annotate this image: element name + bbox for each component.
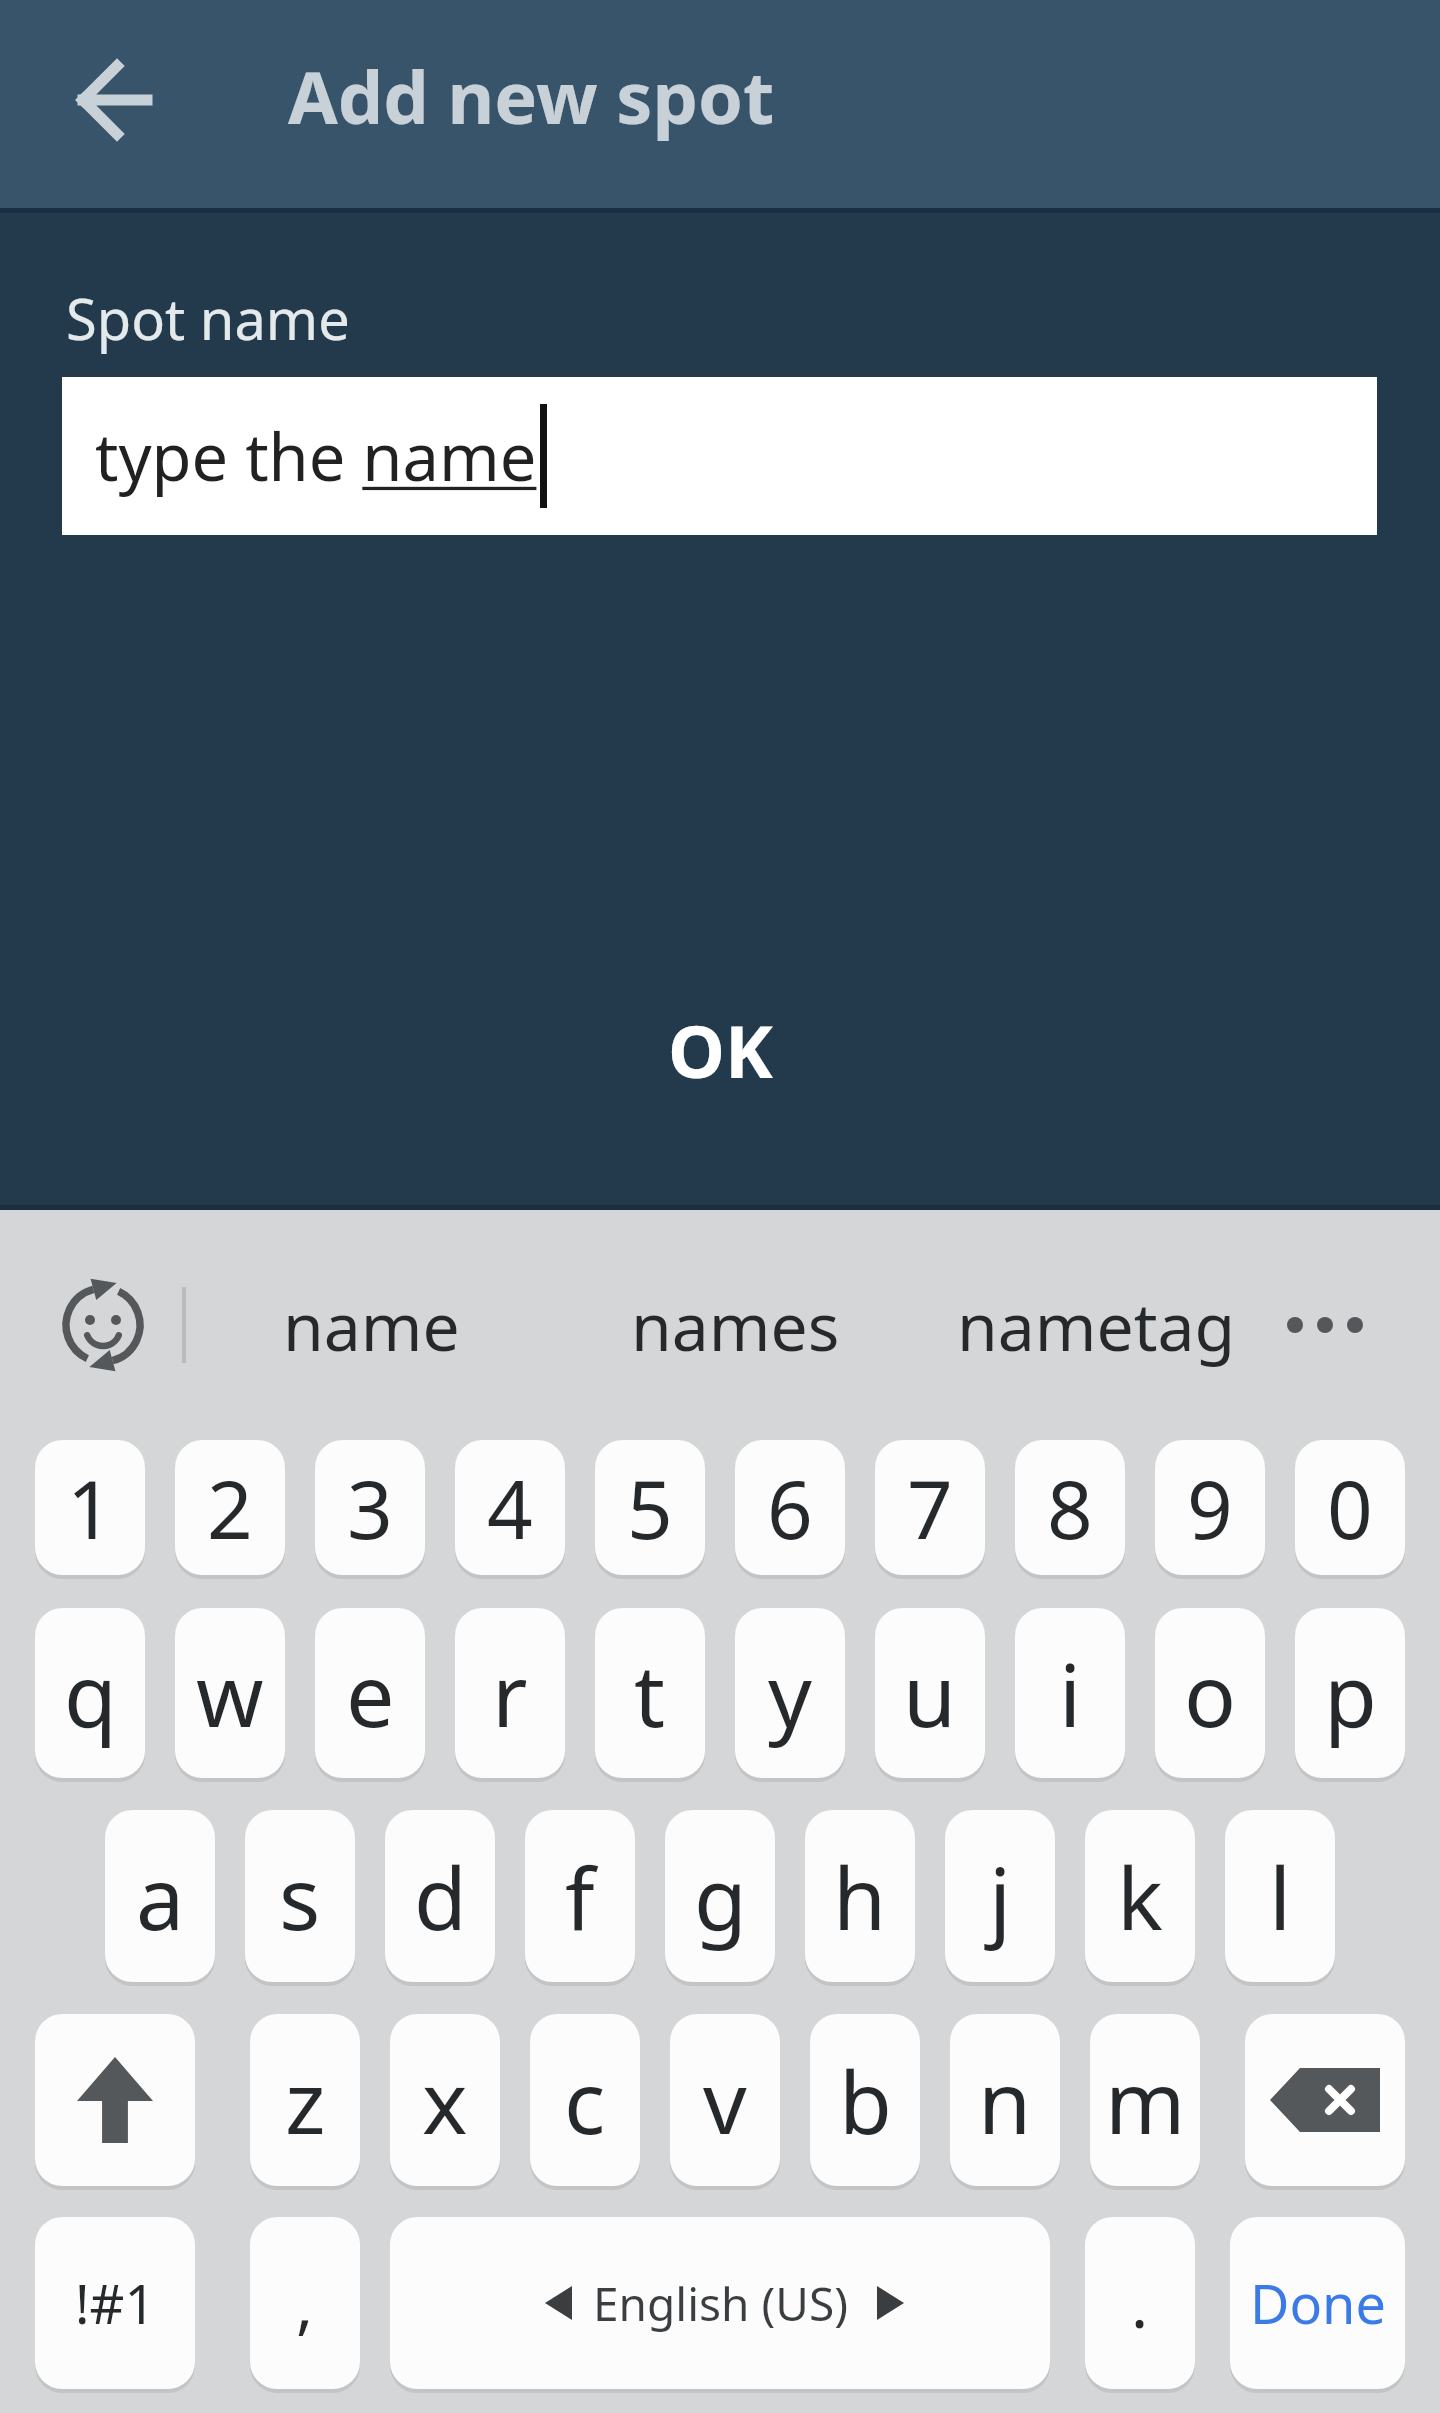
button[interactable]: n	[950, 2014, 1060, 2186]
staticText: ,	[296, 2260, 314, 2347]
button[interactable]: OK	[570, 985, 870, 1115]
button[interactable]: type the name	[62, 377, 1377, 535]
staticText: name	[283, 1280, 460, 1370]
staticText: 5	[627, 1453, 673, 1562]
button[interactable]: k	[1085, 1810, 1195, 1982]
staticText: j	[989, 1838, 1012, 1955]
staticText: 2	[207, 1453, 253, 1562]
button[interactable]: 4	[455, 1440, 565, 1575]
button[interactable]: o	[1155, 1608, 1265, 1778]
staticText: 7	[907, 1453, 953, 1562]
staticText: b	[839, 2042, 892, 2159]
staticText: 0	[1327, 1453, 1373, 1562]
staticText: OK	[668, 1001, 773, 1099]
button[interactable]: q	[35, 1608, 145, 1778]
button[interactable]: g	[665, 1810, 775, 1982]
button[interactable]: i	[1015, 1608, 1125, 1778]
staticText: p	[1324, 1635, 1377, 1752]
staticText: s	[279, 1838, 321, 1955]
button[interactable]: name	[256, 1275, 486, 1375]
staticText: x	[422, 2042, 468, 2159]
staticText: 4	[487, 1453, 533, 1562]
button[interactable]	[1245, 2014, 1405, 2186]
staticText: Add new spot	[288, 47, 775, 145]
staticText: r	[492, 1635, 528, 1752]
staticText: w	[196, 1635, 264, 1752]
staticText: 3	[347, 1453, 393, 1562]
button[interactable]: !#1	[35, 2217, 195, 2389]
staticText: type the name	[95, 412, 537, 501]
staticText: a	[136, 1838, 185, 1955]
button[interactable]: names	[620, 1275, 850, 1375]
button[interactable]: x	[390, 2014, 500, 2186]
button[interactable]: ,	[250, 2217, 360, 2389]
staticText: c	[564, 2042, 606, 2159]
staticText: Done	[1250, 2266, 1386, 2340]
button[interactable]: h	[805, 1810, 915, 1982]
button[interactable]: 9	[1155, 1440, 1265, 1575]
staticText: t	[634, 1635, 666, 1752]
button[interactable]: .	[1085, 2217, 1195, 2389]
staticText: n	[978, 2042, 1032, 2159]
button[interactable]	[1280, 1285, 1370, 1365]
button[interactable]: e	[315, 1608, 425, 1778]
button[interactable]: w	[175, 1608, 285, 1778]
staticText: f	[565, 1838, 595, 1955]
button[interactable]: 2	[175, 1440, 285, 1575]
staticText: nametag	[957, 1280, 1236, 1370]
staticText: k	[1117, 1838, 1163, 1955]
button[interactable]: m	[1090, 2014, 1200, 2186]
staticText: 1	[67, 1453, 113, 1562]
button[interactable]: 1	[35, 1440, 145, 1575]
button[interactable]: c	[530, 2014, 640, 2186]
button[interactable]: d	[385, 1810, 495, 1982]
button[interactable]: 5	[595, 1440, 705, 1575]
button[interactable]	[35, 2014, 195, 2186]
staticText: Spot name	[66, 280, 350, 356]
button[interactable]: 3	[315, 1440, 425, 1575]
button[interactable]: u	[875, 1608, 985, 1778]
staticText: m	[1105, 2042, 1186, 2159]
button[interactable]: j	[945, 1810, 1055, 1982]
button[interactable]: Done	[1230, 2217, 1405, 2389]
staticText: 6	[767, 1453, 813, 1562]
button[interactable]: l	[1225, 1810, 1335, 1982]
button[interactable]: z	[250, 2014, 360, 2186]
staticText: y	[768, 1635, 812, 1752]
staticText: z	[285, 2042, 326, 2159]
staticText: v	[703, 2042, 747, 2159]
button[interactable]: s	[245, 1810, 355, 1982]
button[interactable]: y	[735, 1608, 845, 1778]
button[interactable]: English (US)	[390, 2217, 1050, 2389]
staticText: g	[694, 1838, 747, 1955]
button[interactable]: v	[670, 2014, 780, 2186]
staticText: names	[631, 1280, 840, 1370]
button[interactable]: 0	[1295, 1440, 1405, 1575]
button[interactable]: 7	[875, 1440, 985, 1575]
staticText: English (US)	[593, 2272, 848, 2335]
button[interactable]: t	[595, 1608, 705, 1778]
staticText: o	[1184, 1635, 1237, 1752]
button[interactable]: b	[810, 2014, 920, 2186]
button[interactable]: f	[525, 1810, 635, 1982]
button[interactable]: p	[1295, 1608, 1405, 1778]
staticText: !#1	[75, 2266, 156, 2340]
staticText: q	[64, 1635, 117, 1752]
staticText: l	[1269, 1838, 1292, 1955]
button[interactable]	[55, 40, 175, 160]
staticText: h	[833, 1838, 887, 1955]
staticText: u	[903, 1635, 957, 1752]
staticText: d	[414, 1838, 467, 1955]
staticText: i	[1059, 1635, 1082, 1752]
button[interactable]: a	[105, 1810, 215, 1982]
staticText: .	[1131, 2260, 1149, 2347]
button[interactable]: nametag	[936, 1275, 1256, 1375]
staticText: e	[346, 1635, 395, 1752]
button[interactable]: 6	[735, 1440, 845, 1575]
button[interactable]: r	[455, 1608, 565, 1778]
button[interactable]: 8	[1015, 1440, 1125, 1575]
staticText: 8	[1047, 1453, 1093, 1562]
staticText: 9	[1187, 1453, 1233, 1562]
button[interactable]	[55, 1277, 151, 1373]
